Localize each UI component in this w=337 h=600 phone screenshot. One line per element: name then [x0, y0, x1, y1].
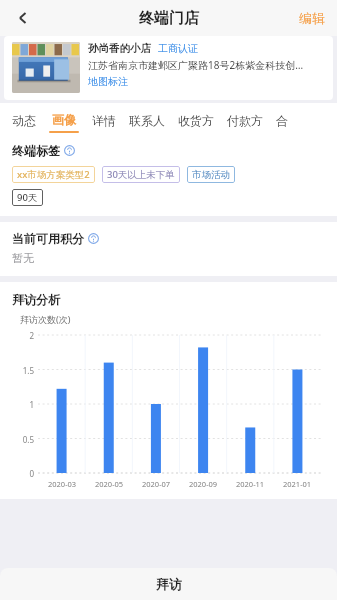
staticText: 2020-03: [48, 479, 77, 489]
button[interactable]: xx市场方案类型2: [12, 166, 95, 183]
button[interactable]: 拜访: [0, 568, 337, 600]
button[interactable]: 30天以上未下单: [102, 166, 180, 183]
button[interactable]: Help about available points: [88, 233, 99, 244]
staticText: 合: [276, 113, 288, 128]
button[interactable]: 工商认证: [158, 42, 198, 55]
button[interactable]: 画像: [49, 103, 79, 135]
button[interactable]: Help about terminal tags: [64, 145, 75, 156]
button[interactable]: Back: [6, 1, 40, 35]
button[interactable]: 详情: [92, 103, 116, 135]
button[interactable]: 编辑: [295, 6, 329, 30]
staticText: 画像: [52, 112, 76, 127]
staticText: 收货方: [178, 113, 214, 128]
staticText: 拜访: [156, 576, 182, 592]
staticText: 联系人: [129, 113, 165, 128]
button[interactable]: 90天: [12, 189, 43, 206]
button[interactable]: 联系人: [129, 103, 165, 135]
staticText: 拜访次数(次): [20, 313, 71, 325]
staticText: 终端门店: [139, 9, 199, 28]
staticText: 付款方: [227, 113, 263, 128]
button[interactable]: 付款方: [227, 103, 263, 135]
staticText: 2: [29, 330, 34, 341]
staticText: xx市场方案类型2: [17, 168, 90, 181]
staticText: 拜访分析: [12, 292, 60, 307]
staticText: 市场活动: [192, 169, 230, 181]
staticText: 详情: [92, 113, 116, 128]
staticText: 1: [29, 399, 34, 410]
staticText: 2020-09: [189, 479, 218, 489]
staticText: 2020-05: [95, 479, 124, 489]
staticText: 2020-07: [142, 479, 171, 489]
staticText: 30天以上未下单: [107, 168, 175, 181]
staticText: 动态: [12, 113, 36, 128]
button[interactable]: 合: [276, 103, 288, 135]
staticText: 0.5: [22, 434, 34, 445]
button[interactable]: 孙尚香的小店: [4, 36, 333, 100]
button[interactable]: 地图标注: [88, 75, 128, 88]
staticText: 2020-11: [236, 479, 265, 489]
staticText: 0: [29, 468, 34, 479]
button[interactable]: 动态: [12, 103, 36, 135]
button[interactable]: 市场活动: [187, 166, 235, 183]
staticText: 终端标签: [12, 143, 60, 158]
staticText: 90天: [17, 191, 38, 204]
staticText: 2021-01: [283, 479, 312, 489]
staticText: 当前可用积分: [12, 231, 84, 246]
staticText: 孙尚香的小店: [88, 42, 151, 55]
button[interactable]: 收货方: [178, 103, 214, 135]
staticText: 暂无: [12, 251, 34, 265]
staticText: 江苏省南京市建邺区广聚路18号2栋紫金科技创…: [88, 58, 325, 72]
staticText: 编辑: [299, 10, 325, 26]
staticText: 1.5: [22, 365, 34, 376]
